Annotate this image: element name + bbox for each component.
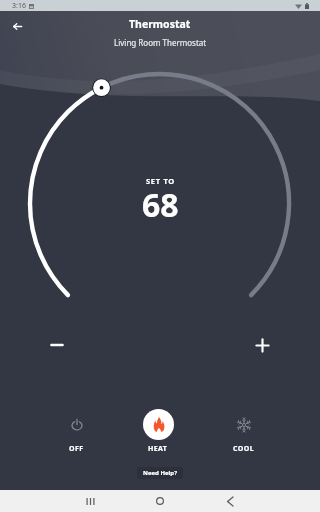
staticText: HEAT [148,444,168,454]
button[interactable]: Back [216,490,244,512]
button[interactable]: Decrease temperature [43,331,71,359]
button[interactable]: Need Help? [137,467,183,479]
staticText: OFF [69,444,84,454]
button[interactable]: OFF [48,409,104,454]
staticText: SET TO [146,176,175,186]
staticText: Need Help? [143,469,178,477]
staticText: 68 [142,183,179,227]
staticText: Thermostat [129,17,191,31]
staticText: Living Room Thermostat [114,37,207,48]
staticText: COOL [233,444,254,454]
staticText: 3:16 [12,1,26,11]
button[interactable]: Recent apps [76,490,104,512]
button[interactable]: HEAT [130,409,186,454]
button[interactable]: Back [3,12,31,40]
button[interactable]: Increase temperature [248,331,276,359]
button[interactable]: COOL [215,409,271,454]
button[interactable]: Home [146,490,174,512]
